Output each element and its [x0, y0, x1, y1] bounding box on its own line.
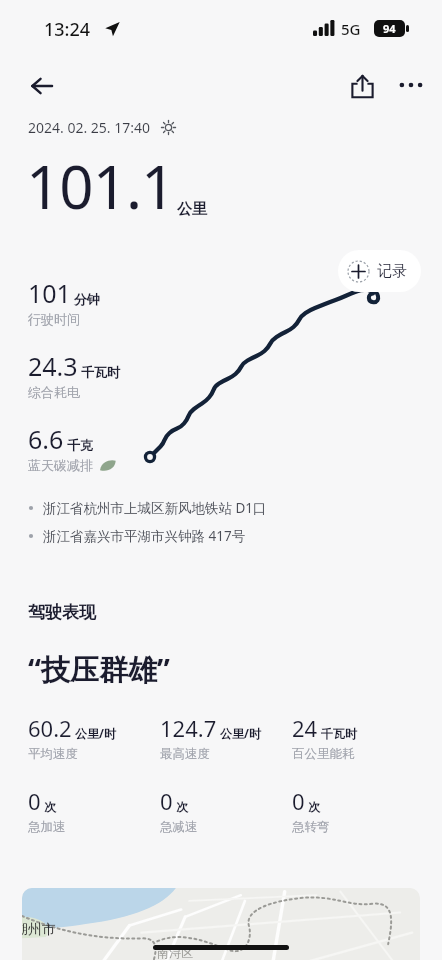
staticText: 13:24 — [44, 17, 91, 42]
staticText: 0 — [160, 786, 173, 816]
staticText: 平均速度 — [28, 746, 78, 762]
button[interactable]: More options — [388, 62, 434, 108]
staticText: 分钟 — [74, 291, 100, 307]
staticText: 蓝天碳减排 — [28, 457, 93, 473]
staticText: 5G — [341, 19, 361, 39]
staticText: 0 — [292, 786, 305, 816]
button[interactable]: 0 — [28, 786, 160, 835]
staticText: 千瓦时 — [81, 364, 120, 380]
button[interactable]: Map — [22, 888, 420, 960]
button[interactable]: 60.2 — [28, 713, 160, 762]
staticText: 101.1 — [26, 145, 175, 227]
staticText: 最高速度 — [160, 746, 210, 762]
staticText: 千瓦时 — [321, 726, 357, 741]
staticText: 2024. 02. 25. 17:40 — [28, 118, 151, 137]
staticText: 千克 — [67, 437, 93, 453]
button[interactable]: 124.7 — [160, 713, 292, 762]
staticText: 浙江省嘉兴市平湖市兴钟路 417号 — [43, 527, 246, 545]
staticText: 24.3 — [28, 349, 78, 383]
button[interactable]: 记录 — [338, 250, 421, 292]
staticText: 浙江省杭州市上城区新风地铁站 D1口 — [43, 499, 267, 517]
staticText: 急加速 — [28, 819, 66, 835]
staticText: 记录 — [377, 262, 407, 281]
staticText: “技压群雄” — [28, 649, 170, 689]
staticText: 公里/时 — [220, 725, 261, 741]
staticText: 24 — [292, 713, 318, 743]
staticText: 湖州市 — [22, 921, 56, 939]
staticText: 急减速 — [160, 819, 198, 835]
staticText: 次 — [44, 799, 56, 814]
staticText: 行驶时间 — [28, 311, 80, 327]
staticText: 124.7 — [160, 713, 217, 743]
staticText: 94 — [383, 21, 396, 36]
staticText: 公里/时 — [75, 725, 116, 741]
staticText: 0 — [28, 786, 41, 816]
staticText: 南浔区 — [157, 945, 193, 960]
staticText: 60.2 — [28, 713, 72, 743]
staticText: 百公里能耗 — [292, 746, 355, 762]
staticText: 急转弯 — [292, 819, 330, 835]
button[interactable]: 0 — [160, 786, 292, 835]
button[interactable]: 0 — [292, 786, 424, 835]
staticText: 次 — [176, 799, 188, 814]
button[interactable]: 24 — [292, 713, 424, 762]
staticText: 101 — [28, 276, 71, 310]
staticText: 次 — [308, 799, 320, 814]
staticText: 驾驶表现 — [28, 602, 96, 623]
staticText: 公里 — [177, 200, 207, 219]
staticText: 6.6 — [28, 422, 64, 456]
staticText: 综合耗电 — [28, 384, 80, 400]
button[interactable]: Back — [18, 62, 66, 110]
button[interactable]: Share — [338, 62, 386, 110]
